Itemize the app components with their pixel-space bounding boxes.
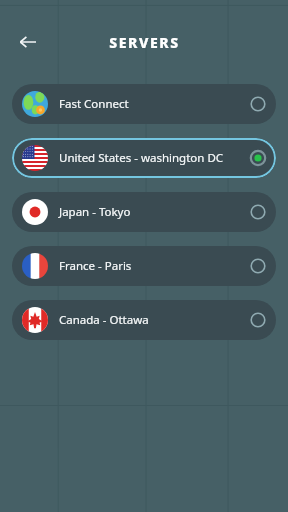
button[interactable]: Japan - Tokyo bbox=[12, 192, 276, 232]
staticText: France - Paris bbox=[59, 258, 250, 274]
staticText: Japan - Tokyo bbox=[59, 204, 250, 220]
button[interactable]: Fast Connect bbox=[12, 84, 276, 124]
button[interactable]: France - Paris bbox=[12, 246, 276, 286]
staticText: Canada - Ottawa bbox=[59, 312, 250, 328]
staticText: Fast Connect bbox=[59, 96, 250, 112]
staticText: United States - washington DC bbox=[59, 150, 250, 166]
button[interactable]: United States - washington DC bbox=[12, 138, 276, 178]
staticText: SERVERS bbox=[109, 33, 180, 52]
button[interactable]: Back bbox=[8, 22, 48, 62]
button[interactable]: Canada - Ottawa bbox=[12, 300, 276, 340]
